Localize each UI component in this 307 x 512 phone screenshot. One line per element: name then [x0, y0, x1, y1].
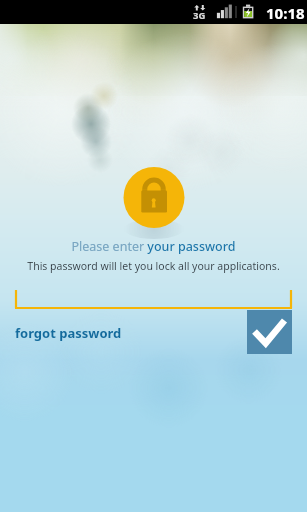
- button[interactable]: forgot password: [9, 319, 128, 347]
- staticText: forgot password: [15, 324, 122, 342]
- staticText: 10:18: [266, 3, 305, 23]
- staticText: Please enter your password: [0, 238, 307, 255]
- button[interactable]: Confirm password: [247, 310, 292, 354]
- staticText: 3G: [193, 9, 206, 22]
- staticText: This password will let you lock all your…: [0, 259, 307, 273]
